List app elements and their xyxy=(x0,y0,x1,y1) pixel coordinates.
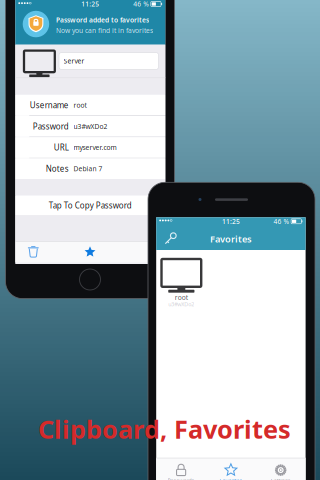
staticText: Debian 7 xyxy=(74,164,103,173)
staticText: Settings xyxy=(271,477,291,480)
button[interactable]: Favorite xyxy=(76,241,104,263)
staticText: Passwords xyxy=(168,477,195,480)
staticText: Username xyxy=(30,100,69,110)
staticText: URL xyxy=(54,142,69,153)
button[interactable]: Delete password xyxy=(20,241,46,262)
staticText: 11:25 xyxy=(81,0,99,8)
button[interactable]: Passwords xyxy=(158,229,182,249)
staticText: Notes xyxy=(46,163,69,174)
staticText: u3#wXDo2 xyxy=(168,301,194,308)
staticText: Password xyxy=(33,121,69,132)
button[interactable]: Settings xyxy=(256,458,306,480)
staticText: Now you can find it in favorites xyxy=(56,26,153,35)
staticText: root xyxy=(74,101,87,110)
staticText: Clipboard, Favorites xyxy=(38,412,291,446)
staticText: Tap To Copy Password xyxy=(49,200,132,211)
staticText: 11:25 xyxy=(222,217,240,226)
staticText: u3#wXDo2 xyxy=(74,122,108,131)
button[interactable]: root xyxy=(161,259,201,308)
button[interactable]: Tap To Copy Password xyxy=(15,196,165,215)
staticText: root xyxy=(175,293,188,302)
staticText: Server xyxy=(63,57,84,65)
staticText: Favorites xyxy=(219,477,242,480)
button[interactable]: Favorites xyxy=(206,458,256,480)
staticText: 46 % xyxy=(273,217,289,226)
button[interactable]: Passwords xyxy=(156,458,206,480)
staticText: 46 % xyxy=(133,0,149,8)
staticText: Password added to favorites xyxy=(56,16,149,24)
staticText: myserver.com xyxy=(74,143,117,152)
staticText: Favorites xyxy=(210,233,252,245)
